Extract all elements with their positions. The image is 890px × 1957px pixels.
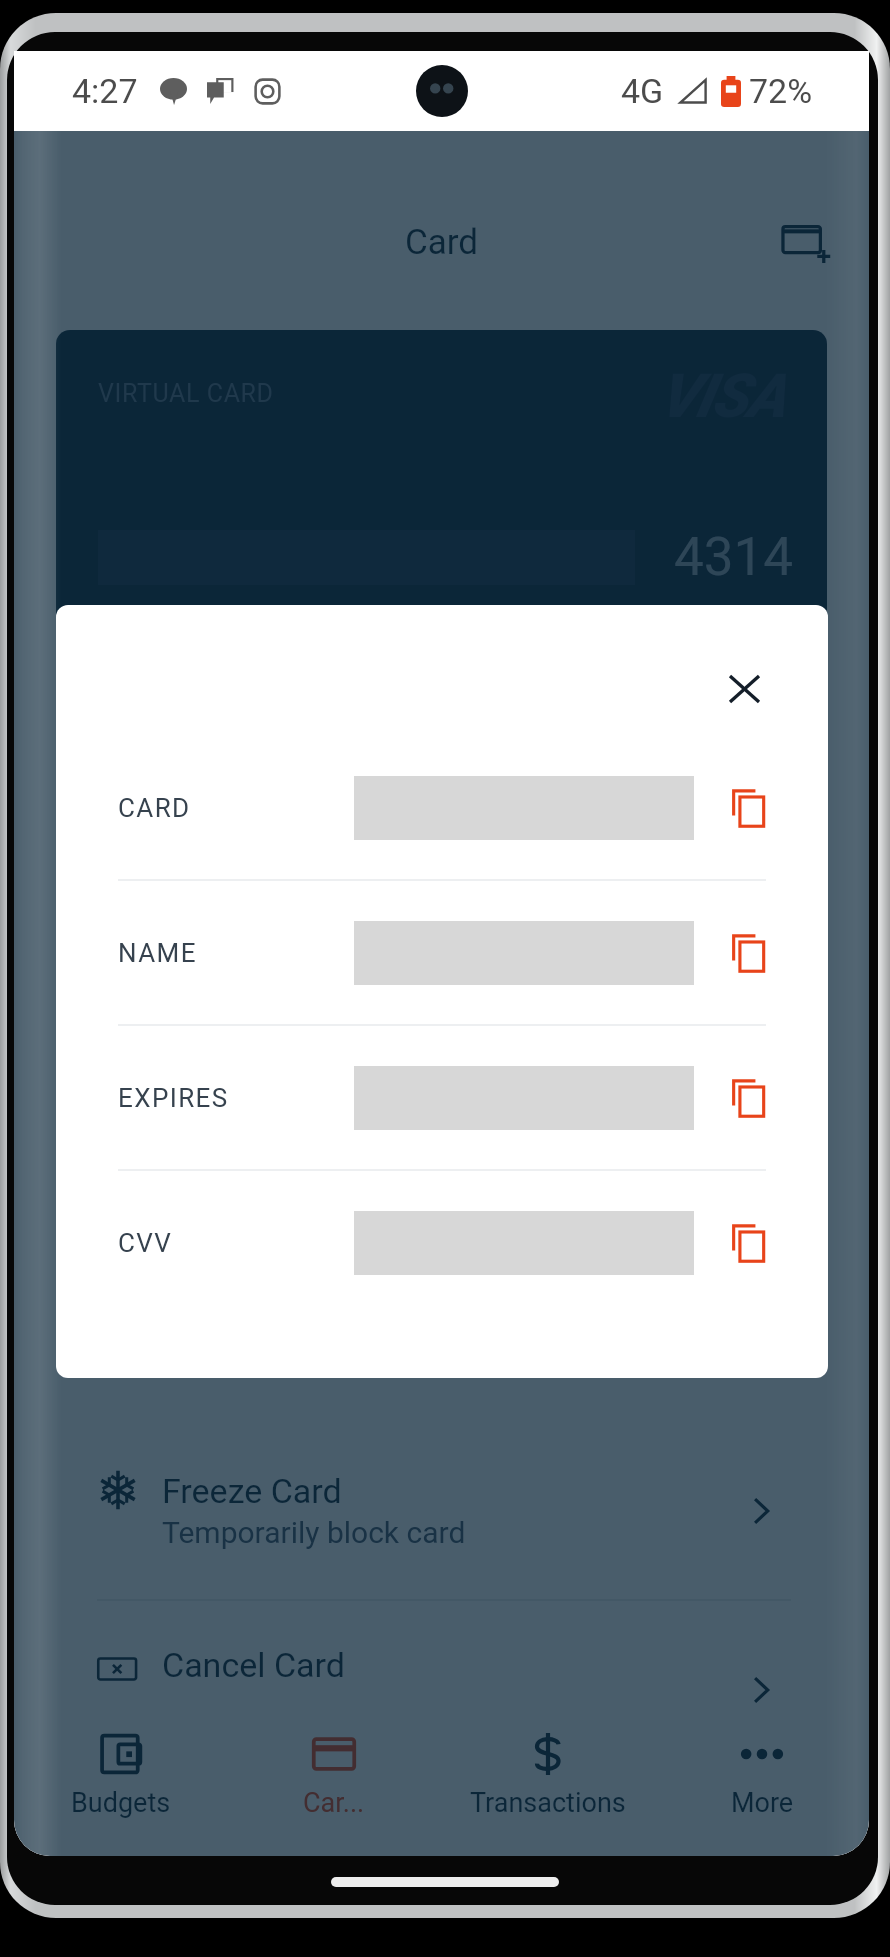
- staticText: 4314: [674, 526, 794, 588]
- button[interactable]: Copy CVV: [724, 1219, 772, 1267]
- staticText: CVV: [118, 1228, 173, 1258]
- staticText: Temporarily block card: [162, 1515, 466, 1550]
- button[interactable]: More: [655, 1708, 869, 1856]
- button[interactable]: Cancel Card: [56, 1601, 827, 1778]
- button[interactable]: Budgets: [14, 1708, 227, 1856]
- button[interactable]: Car...: [227, 1708, 441, 1856]
- staticText: VIRTUAL CARD: [98, 379, 274, 408]
- button[interactable]: Freeze Card: [56, 1422, 827, 1599]
- staticText: Car...: [303, 1787, 365, 1819]
- staticText: Budgets: [71, 1787, 171, 1819]
- staticText: Freeze Card: [162, 1471, 342, 1511]
- staticText: Cancel Card: [162, 1645, 345, 1685]
- staticText: VISA: [658, 360, 785, 431]
- button[interactable]: Add card: [773, 209, 839, 275]
- staticText: 72%: [749, 71, 813, 111]
- staticText: 4G: [621, 71, 664, 111]
- button[interactable]: Copy CARD: [724, 784, 772, 832]
- button[interactable]: Transactions: [441, 1708, 655, 1856]
- button[interactable]: Copy NAME: [724, 929, 772, 977]
- staticText: 4:27: [72, 71, 138, 111]
- button[interactable]: VIRTUAL CARD: [56, 330, 827, 715]
- button[interactable]: Close: [713, 658, 775, 720]
- staticText: More: [731, 1787, 794, 1819]
- staticText: NAME: [118, 938, 197, 968]
- staticText: EXPIRES: [118, 1083, 229, 1113]
- staticText: Card: [405, 222, 479, 263]
- staticText: Transactions: [470, 1787, 626, 1819]
- staticText: CARD: [118, 793, 191, 823]
- button[interactable]: Copy EXPIRES: [724, 1074, 772, 1122]
